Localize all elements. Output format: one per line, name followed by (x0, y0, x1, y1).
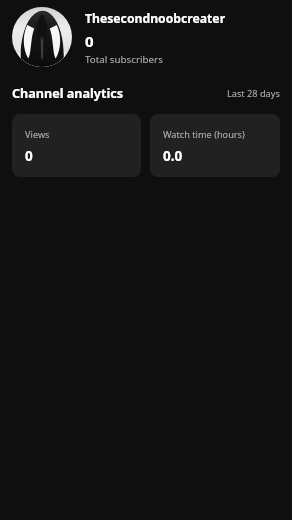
button[interactable]: Last 28 days (227, 87, 280, 100)
staticText: Watch time (hours) (163, 128, 245, 141)
staticText: Channel analytics (12, 85, 124, 102)
staticText: Views (25, 128, 50, 141)
staticText: Thesecondnoobcreater (85, 10, 226, 27)
button[interactable]: Views (12, 114, 141, 177)
staticText: Total subscribers (85, 53, 163, 66)
other: Channel avatar (12, 7, 72, 67)
button[interactable]: Watch time (hours) (150, 114, 280, 177)
staticText: 0.0 (163, 147, 183, 165)
staticText: 0 (85, 31, 94, 51)
staticText: 0 (25, 147, 33, 165)
button[interactable]: Channel avatar (0, 0, 292, 73)
